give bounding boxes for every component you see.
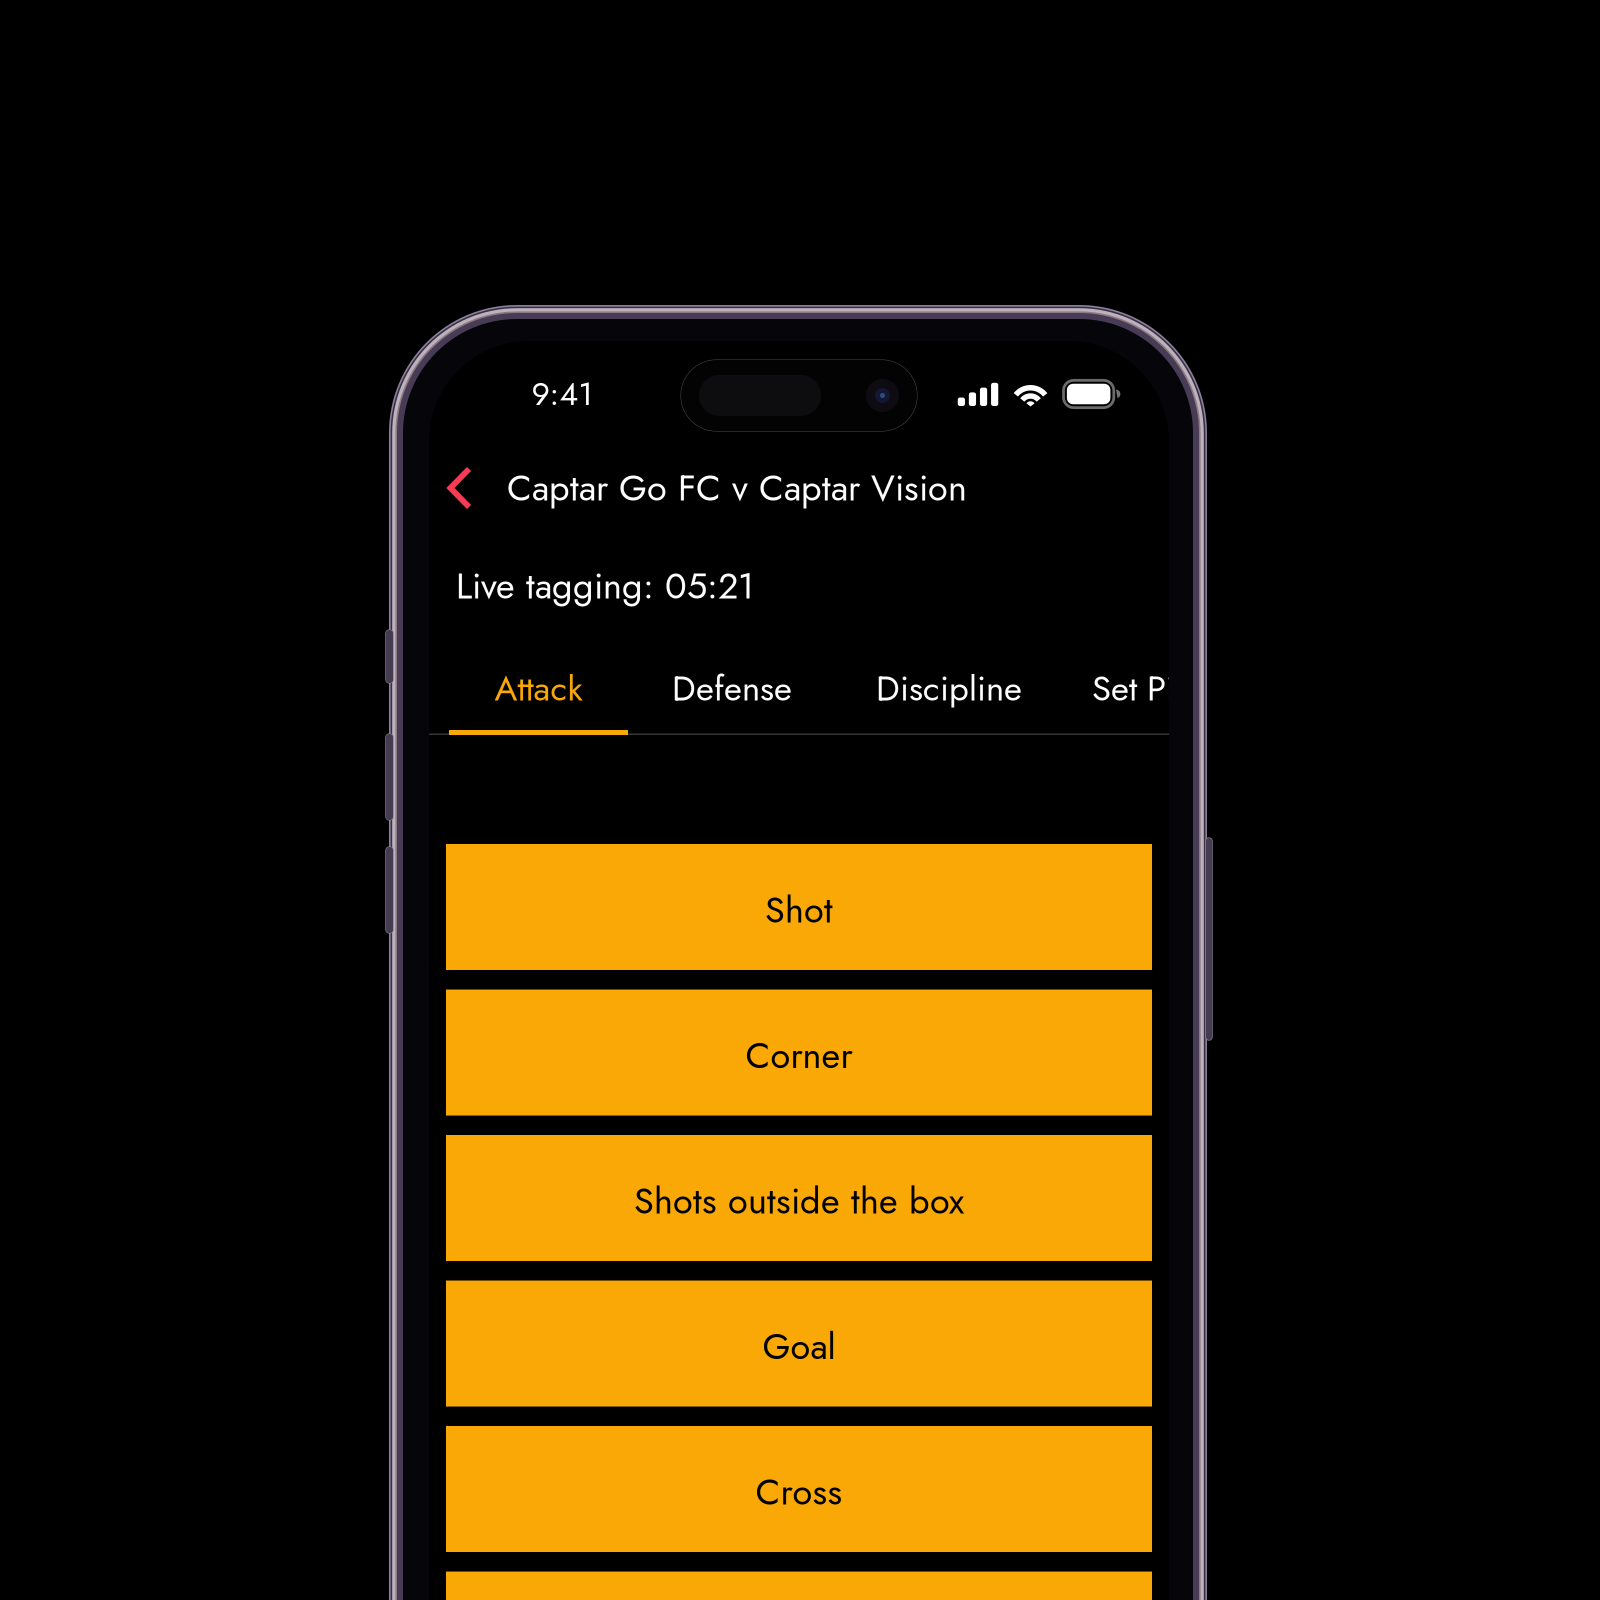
button[interactable]: Defense — [628, 647, 836, 735]
staticText: Shot — [765, 884, 833, 936]
button[interactable]: Discipline — [836, 647, 1062, 735]
button[interactable]: Goal — [446, 1280, 1152, 1406]
staticText: Live tagging: 05:21 — [456, 560, 754, 612]
staticText: Attack — [494, 663, 582, 714]
button[interactable]: Back — [447, 448, 507, 528]
staticText: Shots outside the box — [634, 1175, 964, 1227]
button[interactable]: Shots outside the box — [446, 1135, 1152, 1261]
staticText: 9:41 — [531, 371, 592, 417]
staticText: Goal — [762, 1320, 835, 1372]
button[interactable]: Corner — [446, 989, 1152, 1115]
button[interactable]: Set Pieces — [1062, 647, 1272, 735]
staticText: Discipline — [876, 663, 1022, 714]
staticText: Set Pieces — [1092, 663, 1242, 714]
staticText: Defense — [672, 663, 792, 714]
staticText: Cross — [755, 1466, 842, 1518]
staticText: Corner — [745, 1029, 852, 1081]
button[interactable]: Attack — [449, 647, 628, 735]
button[interactable]: Cross — [446, 1426, 1152, 1552]
staticText: Captar Go FC v Captar Vision — [507, 462, 967, 514]
button[interactable]: Shot — [446, 844, 1152, 970]
